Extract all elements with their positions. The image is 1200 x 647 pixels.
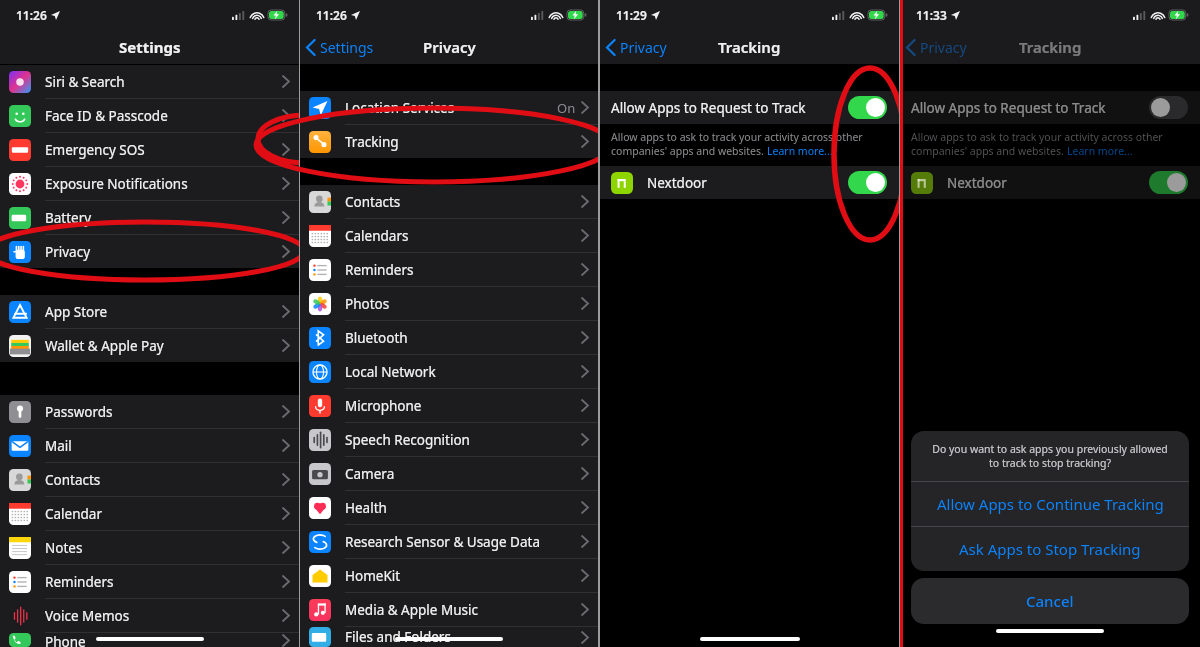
staticText: Speech Recognition xyxy=(345,431,470,449)
staticText: App Store xyxy=(45,303,108,321)
staticText: Wallet & Apple Pay xyxy=(45,337,164,355)
staticText: Settings xyxy=(119,37,181,57)
staticText: Notes xyxy=(45,539,83,557)
button[interactable]: Nextdoor xyxy=(611,166,887,199)
staticText: companies' apps and websites. xyxy=(911,144,1067,158)
staticText: Contacts xyxy=(45,471,101,489)
staticText: Files and Folders xyxy=(345,628,451,646)
staticText: HomeKit xyxy=(345,567,401,585)
staticText: Allow Apps to Continue Tracking xyxy=(937,494,1164,514)
button[interactable]: Notes xyxy=(0,531,299,565)
staticText: Privacy xyxy=(620,38,667,57)
button[interactable]: Files and Folders xyxy=(300,627,598,647)
button[interactable]: Nextdoor xyxy=(911,166,1188,199)
button[interactable]: Emergency SOS xyxy=(0,133,299,167)
staticText: Tracking xyxy=(718,37,781,57)
staticText: 11:26 xyxy=(316,7,347,23)
button[interactable]: Allow Apps to Request to Track xyxy=(611,91,887,124)
staticText: Privacy xyxy=(45,243,91,261)
staticText: Voice Memos xyxy=(45,607,130,625)
button[interactable]: Bluetooth xyxy=(300,321,598,355)
button[interactable]: Back to Privacy xyxy=(607,38,667,57)
staticText: Research Sensor & Usage Data xyxy=(345,533,540,551)
button[interactable]: Wallet & Apple Pay xyxy=(0,329,299,362)
button[interactable]: Allow Apps to Continue Tracking xyxy=(911,482,1189,526)
button[interactable]: Learn more... xyxy=(1067,144,1133,158)
button[interactable]: Off xyxy=(1149,96,1188,119)
button[interactable]: Siri & Search xyxy=(0,65,299,99)
staticText: On xyxy=(557,99,576,117)
button[interactable]: Cancel xyxy=(911,578,1189,624)
button[interactable]: Location Services xyxy=(300,91,598,125)
button[interactable]: On xyxy=(1149,171,1188,194)
staticText: Allow apps to ask to track your activity… xyxy=(611,130,863,144)
staticText: Calendar xyxy=(45,505,102,523)
staticText: Nextdoor xyxy=(947,174,1007,192)
button[interactable]: Speech Recognition xyxy=(300,423,598,457)
button[interactable]: Phone xyxy=(0,633,299,647)
button[interactable]: Exposure Notifications xyxy=(0,167,299,201)
button[interactable]: Face ID & Passcode xyxy=(0,99,299,133)
staticText: Emergency SOS xyxy=(45,141,145,159)
staticText: Battery xyxy=(45,209,92,227)
button[interactable]: Media & Apple Music xyxy=(300,593,598,627)
staticText: Tracking xyxy=(1019,37,1082,57)
button[interactable]: Local Network xyxy=(300,355,598,389)
button[interactable]: HomeKit xyxy=(300,559,598,593)
button[interactable]: Battery xyxy=(0,201,299,235)
button[interactable]: On xyxy=(848,171,887,194)
button[interactable]: Calendar xyxy=(0,497,299,531)
button[interactable]: Contacts xyxy=(300,185,598,219)
staticText: Calendars xyxy=(345,227,409,245)
button[interactable]: App Store xyxy=(0,295,299,329)
button[interactable]: Privacy xyxy=(0,235,299,268)
button[interactable]: Passwords xyxy=(0,395,299,429)
staticText: Cancel xyxy=(1026,591,1074,611)
button[interactable]: Back to Settings xyxy=(307,38,374,57)
staticText: companies' apps and websites. xyxy=(611,144,767,158)
staticText: 11:33 xyxy=(916,7,947,23)
staticText: Allow Apps to Request to Track xyxy=(611,99,806,117)
button[interactable]: Reminders xyxy=(300,253,598,287)
staticText: Location Services xyxy=(345,99,455,117)
staticText: Reminders xyxy=(345,261,414,279)
button[interactable]: Health xyxy=(300,491,598,525)
staticText: Mail xyxy=(45,437,72,455)
staticText: Local Network xyxy=(345,363,436,381)
staticText: Tracking xyxy=(345,133,399,151)
button[interactable]: Calendars xyxy=(300,219,598,253)
button[interactable]: Back to Privacy xyxy=(907,38,967,57)
button[interactable]: Microphone xyxy=(300,389,598,423)
staticText: Microphone xyxy=(345,397,422,415)
button[interactable]: Photos xyxy=(300,287,598,321)
staticText: Face ID & Passcode xyxy=(45,107,168,125)
button[interactable]: Reminders xyxy=(0,565,299,599)
button[interactable]: Mail xyxy=(0,429,299,463)
button[interactable]: Tracking xyxy=(300,125,598,158)
staticText: Camera xyxy=(345,465,395,483)
staticText: Bluetooth xyxy=(345,329,408,347)
staticText: Contacts xyxy=(345,193,401,211)
button[interactable]: Voice Memos xyxy=(0,599,299,633)
staticText: Nextdoor xyxy=(647,174,707,192)
staticText: Settings xyxy=(320,38,374,57)
staticText: Siri & Search xyxy=(45,73,125,91)
staticText: Health xyxy=(345,499,387,517)
staticText: Allow Apps to Request to Track xyxy=(911,99,1106,117)
staticText: Ask Apps to Stop Tracking xyxy=(959,539,1141,559)
button[interactable]: On xyxy=(848,96,887,119)
staticText: Media & Apple Music xyxy=(345,601,478,619)
button[interactable]: Research Sensor & Usage Data xyxy=(300,525,598,559)
staticText: Do you want to ask apps you previously a… xyxy=(927,442,1173,470)
staticText: Privacy xyxy=(423,37,476,57)
staticText: Allow apps to ask to track your activity… xyxy=(911,130,1163,144)
button[interactable]: Allow Apps to Request to Track xyxy=(911,91,1188,124)
button[interactable]: Learn more... xyxy=(767,144,833,158)
staticText: Photos xyxy=(345,295,390,313)
staticText: Exposure Notifications xyxy=(45,175,188,193)
staticText: Privacy xyxy=(920,38,967,57)
staticText: Passwords xyxy=(45,403,113,421)
button[interactable]: Contacts xyxy=(0,463,299,497)
button[interactable]: Ask Apps to Stop Tracking xyxy=(911,527,1189,571)
button[interactable]: Camera xyxy=(300,457,598,491)
